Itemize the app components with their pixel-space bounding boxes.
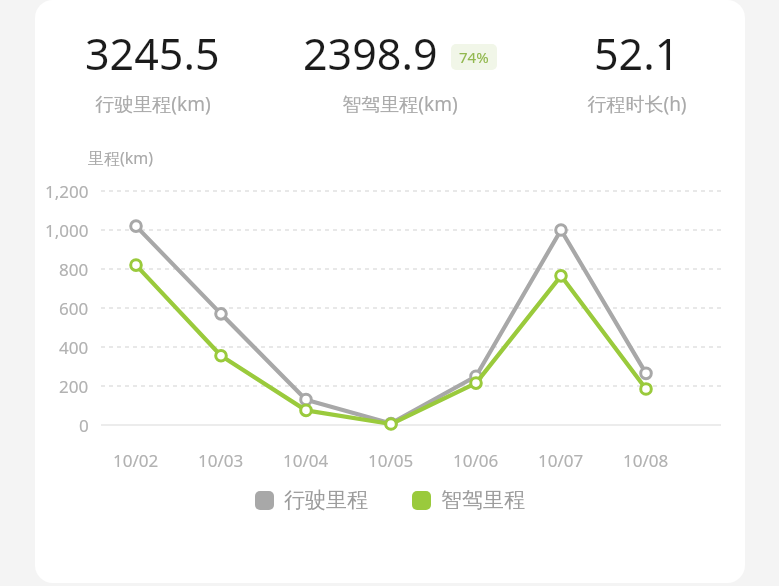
staticText: 行驶里程 xyxy=(284,487,368,513)
button[interactable]: 行驶里程 xyxy=(251,483,372,517)
staticText: 2398.9 xyxy=(303,24,438,83)
staticText: 74% xyxy=(459,47,489,67)
staticText: 里程(km) xyxy=(88,147,154,169)
other: Mileage line chart xyxy=(35,177,745,477)
staticText: 52.1 xyxy=(594,24,680,83)
staticText: 智驾里程(km) xyxy=(342,91,458,117)
staticText: 行驶里程(km) xyxy=(95,91,211,117)
button[interactable]: 2398.9 xyxy=(270,24,529,117)
button[interactable]: 52.1 xyxy=(529,24,745,117)
staticText: 智驾里程 xyxy=(441,487,525,513)
staticText: 3245.5 xyxy=(85,24,220,83)
staticText: 行程时长(h) xyxy=(587,91,687,117)
button[interactable]: 智驾里程 xyxy=(408,483,529,517)
button[interactable]: 3245.5 xyxy=(35,24,270,117)
